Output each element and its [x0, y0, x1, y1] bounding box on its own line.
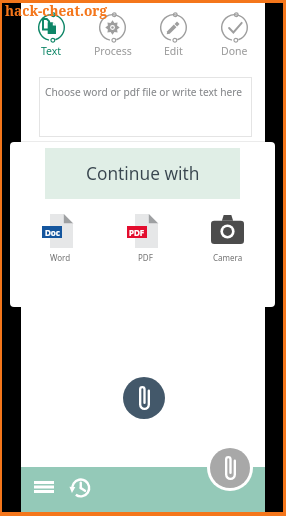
staticText: hack-cheat.org [5, 1, 107, 20]
staticText: PDF [129, 227, 145, 238]
button[interactable]: Attach [123, 377, 165, 419]
button[interactable]: Attach file [210, 448, 250, 488]
button[interactable]: PDF [127, 214, 164, 263]
button[interactable]: Doc [42, 214, 79, 263]
staticText: Process [94, 44, 132, 58]
button[interactable]: Process [82, 14, 143, 58]
button[interactable]: Camera [209, 214, 246, 263]
staticText: Word [50, 252, 71, 263]
staticText: Continue with [86, 162, 200, 186]
button[interactable]: Menu [30, 477, 57, 496]
staticText: PDF [138, 252, 153, 263]
button[interactable]: Done [204, 14, 265, 58]
staticText: Done [221, 44, 248, 58]
button[interactable]: History [67, 475, 92, 500]
button[interactable]: Text [21, 14, 82, 58]
button[interactable]: Edit [143, 14, 204, 58]
staticText: Edit [164, 44, 183, 58]
staticText: Text [41, 44, 62, 58]
button[interactable]: Choose word or pdf file or write text he… [39, 77, 252, 137]
staticText: Doc [45, 227, 60, 238]
staticText: Camera [213, 252, 243, 263]
staticText: Choose word or pdf file or write text he… [45, 85, 242, 99]
